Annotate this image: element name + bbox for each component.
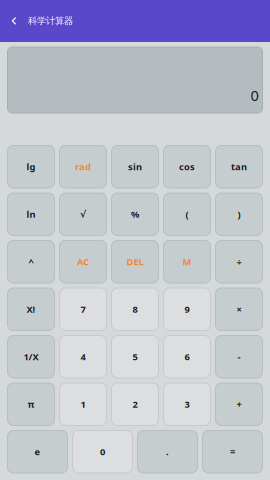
staticText: π (27, 398, 34, 410)
button[interactable]: - (215, 335, 262, 378)
button[interactable]: Back (0, 0, 28, 42)
button[interactable]: X! (7, 288, 54, 330)
button[interactable]: lg (7, 145, 54, 188)
button[interactable]: 0 (72, 430, 132, 473)
staticText: rad (75, 161, 91, 173)
staticText: DEL (126, 256, 143, 268)
staticText: ( (185, 208, 188, 220)
staticText: M (182, 256, 191, 268)
button[interactable]: . (137, 430, 197, 473)
button[interactable]: ln (7, 193, 54, 235)
button[interactable]: % (111, 193, 158, 235)
staticText: √ (80, 209, 86, 220)
staticText: 6 (184, 351, 189, 363)
staticText: % (131, 208, 139, 220)
staticText: 0 (250, 85, 258, 105)
staticText: e (34, 446, 40, 458)
staticText: 0 (100, 446, 105, 458)
staticText: X! (26, 303, 35, 315)
button[interactable]: 4 (59, 335, 106, 378)
staticText: ln (26, 208, 35, 220)
staticText: ÷ (236, 256, 241, 268)
staticText: 科学计算器 (28, 15, 73, 27)
button[interactable]: = (202, 430, 262, 473)
button[interactable]: rad (59, 145, 106, 188)
button[interactable]: cos (163, 145, 210, 188)
staticText: 5 (132, 351, 137, 363)
staticText: 8 (132, 303, 137, 315)
button[interactable]: × (215, 288, 262, 330)
staticText: 7 (80, 303, 85, 315)
button[interactable]: tan (215, 145, 262, 188)
staticText: 1/X (23, 351, 38, 363)
staticText: tan (231, 161, 247, 173)
button[interactable]: 8 (111, 288, 158, 330)
button[interactable]: ) (215, 193, 262, 235)
staticText: 4 (80, 351, 85, 363)
button[interactable]: DEL (111, 240, 158, 283)
button[interactable]: 9 (163, 288, 210, 330)
staticText: cos (179, 161, 195, 173)
staticText: = (230, 446, 235, 458)
button[interactable]: 6 (163, 335, 210, 378)
button[interactable]: ÷ (215, 240, 262, 283)
button[interactable]: √ (59, 193, 106, 235)
staticText: 1 (80, 398, 85, 410)
button[interactable]: M (163, 240, 210, 283)
staticText: lg (26, 161, 35, 173)
staticText: 3 (184, 398, 189, 410)
button[interactable]: 2 (111, 383, 158, 425)
staticText: + (236, 398, 241, 410)
staticText: × (236, 303, 241, 315)
staticText: - (237, 351, 240, 363)
button[interactable]: 1 (59, 383, 106, 425)
button[interactable]: 3 (163, 383, 210, 425)
button[interactable]: e (7, 430, 67, 473)
button[interactable]: ( (163, 193, 210, 235)
button[interactable]: sin (111, 145, 158, 188)
staticText: 9 (184, 303, 189, 315)
staticText: . (166, 446, 169, 458)
staticText: 2 (132, 398, 137, 410)
staticText: ^ (28, 256, 33, 268)
staticText: sin (128, 161, 142, 173)
button[interactable]: ^ (7, 240, 54, 283)
button[interactable]: + (215, 383, 262, 425)
button[interactable]: π (7, 383, 54, 425)
button[interactable]: 1/X (7, 335, 54, 378)
staticText: ) (237, 208, 240, 220)
button[interactable]: 7 (59, 288, 106, 330)
staticText: AC (77, 256, 89, 268)
button[interactable]: AC (59, 240, 106, 283)
button[interactable]: 5 (111, 335, 158, 378)
